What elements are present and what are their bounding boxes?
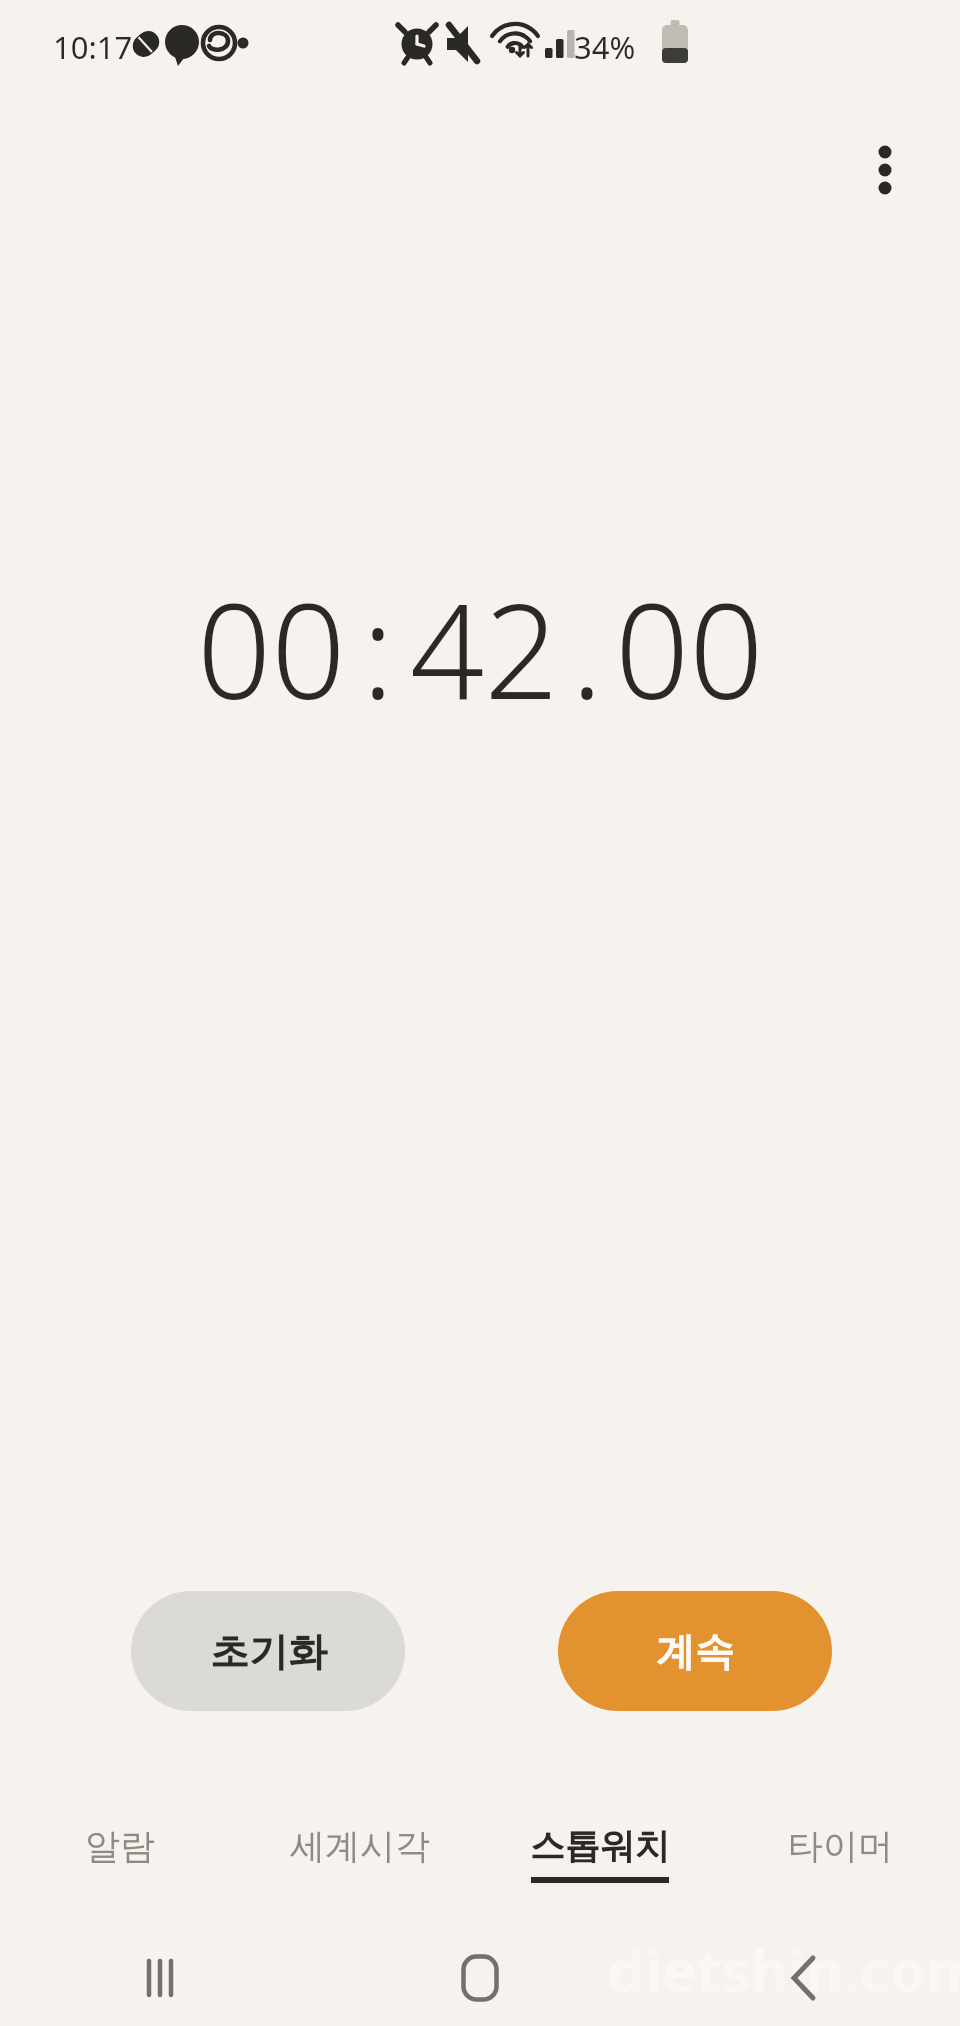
button[interactable]: 스톱워치 [495,1824,705,1916]
button[interactable]: Home [415,1930,545,2026]
button[interactable]: Recents [95,1930,225,2026]
button[interactable]: Back [735,1930,865,2026]
button[interactable]: 세계시각 [255,1824,465,1916]
staticText: 42 [410,560,559,737]
staticText: 00 [615,560,764,737]
staticText: 스톱워치 [530,1824,670,1868]
staticText: 계속 [656,1627,734,1676]
staticText: dietshin.com [608,1930,960,2009]
staticText: 초기화 [210,1627,327,1676]
button[interactable]: More options [845,130,925,210]
staticText: 세계시각 [290,1824,430,1868]
button[interactable]: 알람 [15,1824,225,1916]
staticText: 타이머 [788,1824,893,1868]
button[interactable]: 계속 [558,1591,832,1711]
staticText: 34% [574,26,636,68]
staticText: : [362,560,394,737]
staticText: 알람 [85,1824,155,1868]
staticText: 10:17 [53,26,133,68]
staticText: 00 [197,560,346,737]
button[interactable]: 초기화 [131,1591,405,1711]
button[interactable]: 타이머 [735,1824,945,1916]
staticText: . [571,560,603,737]
